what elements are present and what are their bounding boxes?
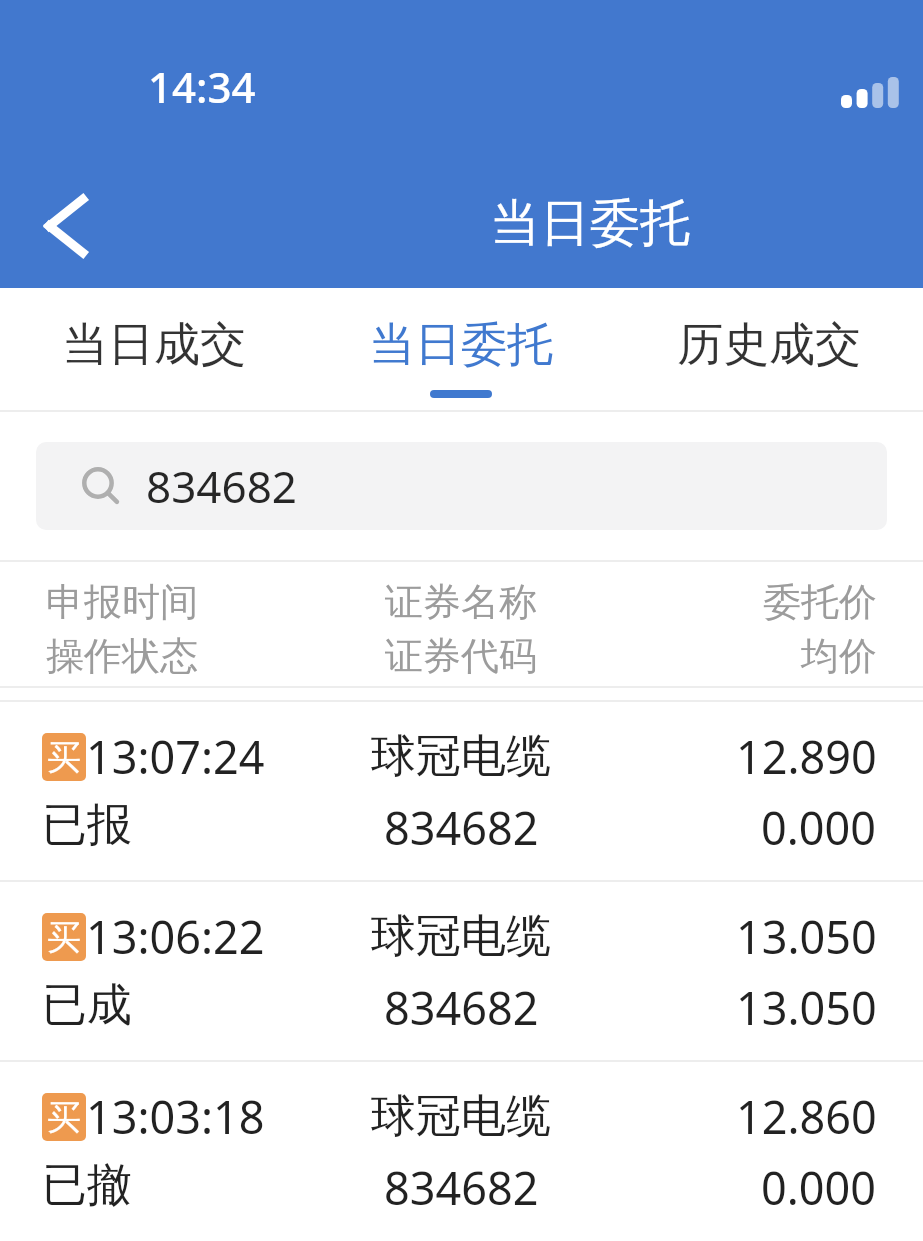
staticText: 13:06:22 xyxy=(86,906,265,967)
staticText: 均价 xyxy=(801,632,877,680)
staticText: 买 xyxy=(47,736,81,779)
button[interactable]: 834682 xyxy=(36,442,887,530)
button[interactable]: 买 xyxy=(0,882,923,1060)
staticText: 球冠电缆 xyxy=(371,728,551,785)
staticText: 12.890 xyxy=(736,726,877,787)
staticText: 14:34 xyxy=(148,58,256,115)
button[interactable]: 买 xyxy=(0,702,923,880)
staticText: 证券代码 xyxy=(385,632,537,680)
button[interactable]: Back xyxy=(16,178,116,274)
staticText: 球冠电缆 xyxy=(371,1088,551,1145)
staticText: 13.050 xyxy=(736,906,877,967)
staticText: 已撤 xyxy=(42,1157,132,1214)
staticText: 0.000 xyxy=(761,1157,877,1218)
staticText: 834682 xyxy=(384,977,539,1038)
staticText: 13:07:24 xyxy=(86,726,265,787)
button[interactable]: 当日成交 xyxy=(0,288,307,410)
staticText: 球冠电缆 xyxy=(371,908,551,965)
staticText: 13.050 xyxy=(736,977,877,1038)
button[interactable]: 历史成交 xyxy=(615,288,923,410)
staticText: 834682 xyxy=(384,797,539,858)
staticText: 当日成交 xyxy=(62,316,246,374)
button[interactable]: 买 xyxy=(0,1062,923,1240)
staticText: 申报时间 xyxy=(46,578,198,626)
button[interactable]: 当日委托 xyxy=(307,288,615,410)
staticText: 0.000 xyxy=(761,797,877,858)
staticText: 操作状态 xyxy=(46,632,198,680)
staticText: 证券名称 xyxy=(385,578,537,626)
staticText: 834682 xyxy=(384,1157,539,1218)
staticText: 委托价 xyxy=(763,578,877,626)
staticText: 834682 xyxy=(146,456,298,516)
staticText: 当日委托 xyxy=(369,316,553,374)
staticText: 买 xyxy=(47,1096,81,1139)
staticText: 历史成交 xyxy=(677,316,861,374)
staticText: 当日委托 xyxy=(490,192,690,255)
staticText: 12.860 xyxy=(736,1086,877,1147)
staticText: 13:03:18 xyxy=(86,1086,265,1147)
staticText: 已成 xyxy=(42,977,132,1034)
staticText: 买 xyxy=(47,916,81,959)
staticText: 已报 xyxy=(42,797,132,854)
